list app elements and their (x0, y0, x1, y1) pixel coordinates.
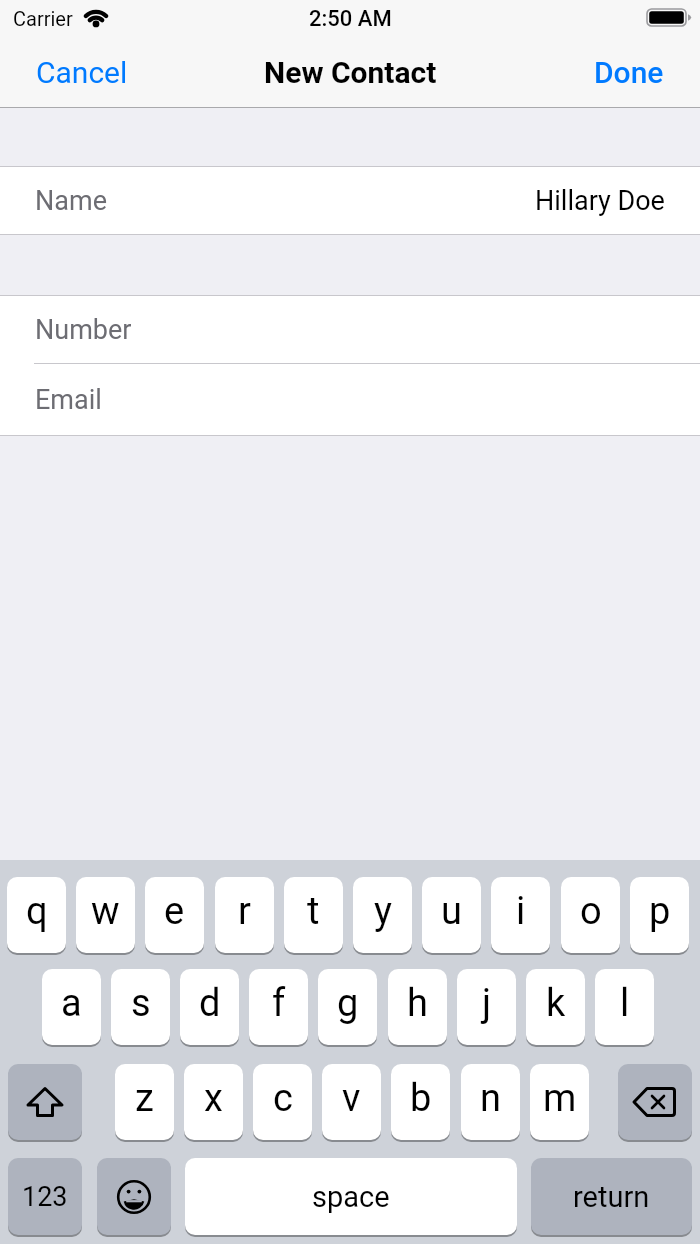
button[interactable] (618, 1064, 692, 1140)
button[interactable]: s (111, 969, 170, 1045)
staticText: v (342, 1076, 361, 1121)
button[interactable]: Cancel (36, 40, 700, 104)
staticText: a (61, 981, 82, 1026)
button[interactable]: g (318, 969, 377, 1045)
button[interactable]: q (7, 877, 66, 953)
button[interactable]: j (457, 969, 516, 1045)
staticText: x (204, 1076, 223, 1121)
button[interactable]: k (526, 969, 585, 1045)
staticText: f (272, 981, 286, 1026)
staticText: b (410, 1076, 432, 1121)
button[interactable]: z (115, 1064, 174, 1140)
button[interactable]: b (391, 1064, 450, 1140)
button[interactable]: space (185, 1158, 517, 1235)
staticText: n (480, 1076, 501, 1121)
staticText: i (516, 889, 526, 934)
button[interactable]: o (561, 877, 620, 953)
button[interactable]: Email (35, 364, 700, 436)
staticText: 123 (22, 1181, 68, 1213)
staticText: Email (35, 384, 102, 416)
button[interactable]: m (530, 1064, 589, 1140)
button[interactable]: p (630, 877, 689, 953)
button[interactable]: y (353, 877, 412, 953)
button[interactable]: t (284, 877, 343, 953)
staticText: r (238, 889, 251, 934)
staticText: Cancel (36, 55, 128, 90)
button[interactable]: Number (35, 295, 700, 364)
button[interactable]: Done (0, 40, 664, 104)
button[interactable]: c (253, 1064, 312, 1140)
staticText: t (307, 889, 320, 934)
staticText: m (543, 1076, 577, 1121)
button[interactable] (8, 1064, 82, 1140)
staticText: w (91, 889, 120, 934)
staticText: u (441, 889, 462, 934)
staticText: h (407, 981, 428, 1026)
staticText: return (573, 1180, 650, 1214)
button[interactable]: Name (0, 166, 700, 235)
button[interactable]: r (215, 877, 274, 953)
button[interactable]: h (388, 969, 447, 1045)
staticText: g (337, 981, 359, 1026)
staticText: space (312, 1180, 390, 1214)
button[interactable]: x (184, 1064, 243, 1140)
button[interactable] (97, 1158, 171, 1235)
staticText: d (199, 981, 221, 1026)
staticText: Hillary Doe (535, 185, 665, 217)
button[interactable]: l (595, 969, 654, 1045)
staticText: c (273, 1076, 293, 1121)
staticText: e (164, 889, 185, 934)
button[interactable]: v (322, 1064, 381, 1140)
staticText: p (649, 889, 671, 934)
staticText: 2:50 AM (309, 6, 392, 32)
button[interactable]: u (422, 877, 481, 953)
staticText: Done (594, 55, 664, 90)
button[interactable]: w (76, 877, 135, 953)
staticText: k (546, 981, 566, 1026)
staticText: Carrier (13, 7, 73, 30)
staticText: y (374, 889, 392, 934)
button[interactable]: 123 (8, 1158, 82, 1235)
button[interactable]: i (491, 877, 550, 953)
button[interactable]: n (461, 1064, 520, 1140)
button[interactable]: e (145, 877, 204, 953)
button[interactable]: d (180, 969, 239, 1045)
staticText: o (580, 889, 602, 934)
staticText: j (482, 981, 492, 1026)
staticText: l (620, 981, 630, 1026)
staticText: New Contact (264, 55, 437, 90)
staticText: Number (35, 314, 132, 346)
staticText: Name (35, 185, 107, 217)
staticText: z (135, 1076, 154, 1121)
staticText: s (131, 981, 151, 1026)
staticText: q (26, 889, 48, 934)
button[interactable]: return (531, 1158, 692, 1235)
button[interactable]: a (42, 969, 101, 1045)
button[interactable]: f (249, 969, 308, 1045)
